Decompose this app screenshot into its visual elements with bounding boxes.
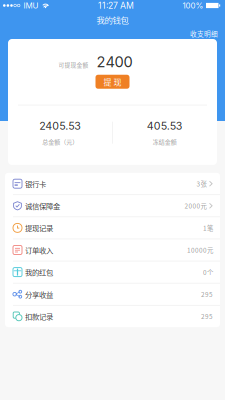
staticText: 提 现	[103, 76, 121, 88]
staticText: 我的钱包	[96, 14, 128, 26]
staticText: 405.53	[147, 119, 183, 132]
staticText: 扣款记录	[25, 311, 53, 322]
staticText: 11:27 AM	[98, 0, 134, 11]
staticText: 我的红包	[25, 267, 53, 277]
staticText: 10000元	[187, 245, 213, 255]
staticText: 1笔	[203, 223, 213, 233]
staticText: 银行卡	[25, 178, 46, 189]
button[interactable]: 我的红包	[5, 261, 220, 283]
staticText: 总金额（元）	[42, 137, 78, 146]
staticText: 100%	[182, 1, 203, 10]
button[interactable]: 提现记录	[5, 217, 220, 239]
staticText: 订单收入	[25, 245, 53, 255]
staticText: IMU	[23, 1, 38, 10]
staticText: 2405.53	[39, 119, 81, 132]
button[interactable]: 订单收入	[5, 239, 220, 261]
staticText: 295	[201, 312, 213, 321]
button[interactable]: 收支明细	[182, 11, 225, 39]
staticText: 冻结金额	[153, 137, 177, 146]
staticText: 2400	[96, 53, 132, 71]
button[interactable]: 提 现	[95, 75, 129, 89]
button[interactable]: 扣款记录	[5, 305, 220, 327]
staticText: 可提现金额	[58, 61, 88, 69]
staticText: 3张	[196, 179, 206, 188]
staticText: 2000元	[184, 201, 206, 210]
button[interactable]: 银行卡	[5, 173, 220, 194]
staticText: 分享收益	[25, 289, 53, 299]
button[interactable]: 诚信保障金	[5, 195, 220, 216]
staticText: 0个	[203, 267, 213, 277]
staticText: 295	[201, 290, 213, 299]
staticText: 提现记录	[25, 223, 53, 233]
staticText: 收支明细	[190, 29, 218, 38]
button[interactable]: 分享收益	[5, 283, 220, 305]
staticText: 诚信保障金	[25, 200, 60, 211]
